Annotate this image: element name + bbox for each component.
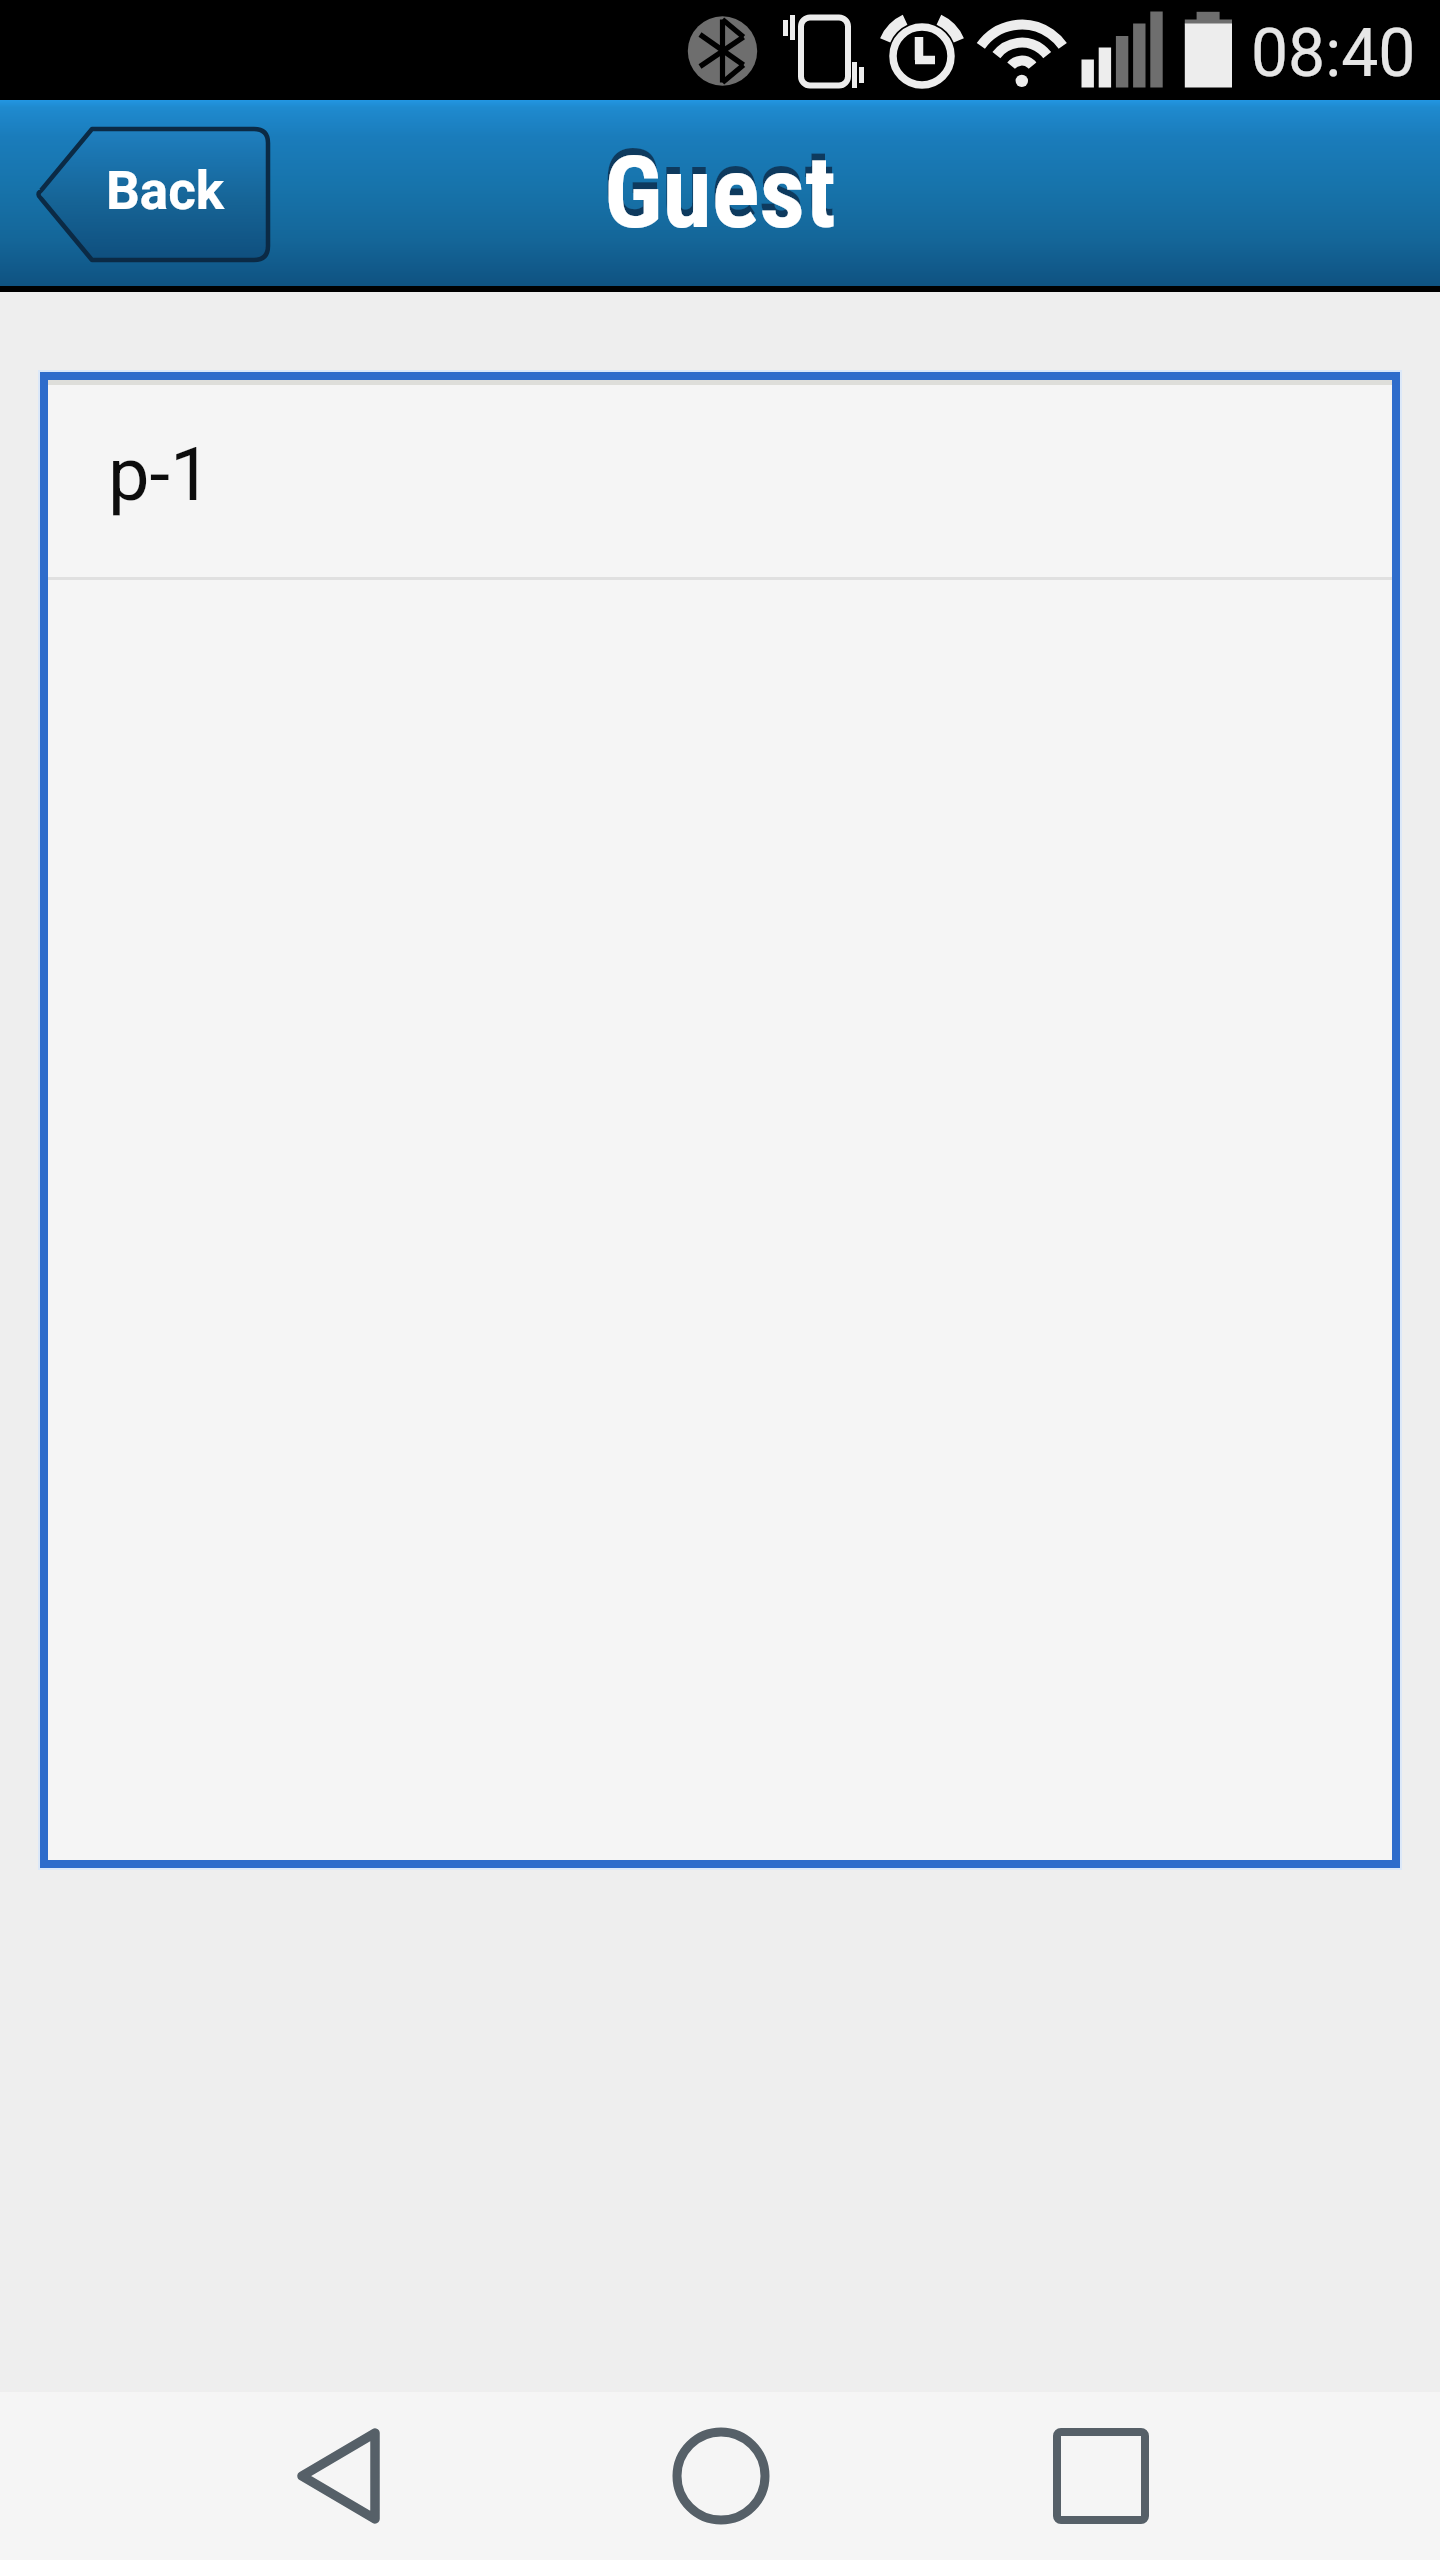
staticText: Guest [604, 134, 836, 251]
button[interactable]: p-1 [48, 380, 1392, 1860]
button[interactable]: Back [36, 129, 268, 260]
staticText: Back [106, 160, 225, 222]
button[interactable]: Home [480, 2392, 960, 2560]
staticText: Guest [603, 127, 835, 244]
button[interactable]: Recent apps [960, 2392, 1440, 2560]
button[interactable]: Back [0, 2392, 480, 2560]
staticText: p-1 [108, 431, 212, 518]
staticText: 08:40 [1251, 15, 1416, 92]
